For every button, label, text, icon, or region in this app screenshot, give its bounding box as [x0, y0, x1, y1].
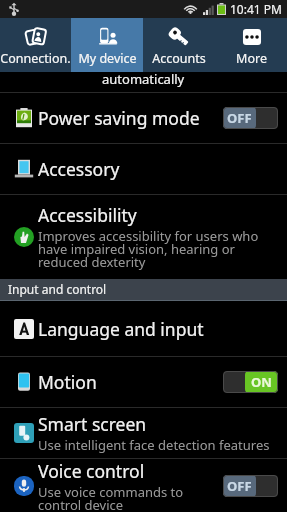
button[interactable]: Connections — [0, 18, 71, 72]
other: My device — [97, 26, 119, 48]
button[interactable]: Language and input — [0, 301, 287, 356]
staticText: automatically — [102, 70, 185, 88]
staticText: Voice control — [38, 459, 145, 483]
other: More — [241, 26, 263, 48]
button[interactable]: Voice control — [0, 459, 287, 512]
button[interactable]: Accessibility — [0, 195, 287, 279]
staticText: Input and control — [8, 281, 107, 297]
staticText: OFF — [227, 477, 252, 495]
staticText: OFF — [227, 109, 252, 127]
button[interactable]: ON — [223, 371, 278, 393]
staticText: Use voice commands to control device — [38, 483, 184, 512]
button[interactable]: Smart screen — [0, 408, 287, 458]
staticText: Accounts — [152, 50, 206, 67]
staticText: Power saving mode — [38, 106, 200, 130]
button[interactable]: Accounts — [143, 18, 215, 72]
staticText: Improves accessibility for users who hav… — [38, 227, 259, 271]
button[interactable]: More — [215, 18, 287, 72]
staticText: My device — [78, 50, 137, 67]
other: Accounts — [168, 26, 190, 48]
button[interactable]: Power saving mode — [0, 93, 287, 143]
staticText: Language and input — [38, 317, 204, 341]
staticText: ON — [251, 373, 272, 391]
staticText: Accessibility — [38, 203, 137, 227]
staticText: More — [236, 50, 267, 67]
button[interactable]: My device — [71, 18, 143, 72]
button[interactable]: Accessory — [0, 144, 287, 194]
staticText: 10:41 PM — [230, 1, 282, 17]
staticText: Use intelligent face detection features — [38, 436, 270, 454]
staticText: Accessory — [38, 157, 120, 181]
button[interactable]: OFF — [223, 107, 278, 129]
staticText: Connection.. — [0, 50, 71, 67]
other: Connections — [25, 26, 47, 48]
button[interactable]: Motion — [0, 357, 287, 407]
button[interactable]: OFF — [223, 475, 278, 497]
staticText: Motion — [38, 370, 97, 394]
staticText: Smart screen — [38, 412, 147, 436]
